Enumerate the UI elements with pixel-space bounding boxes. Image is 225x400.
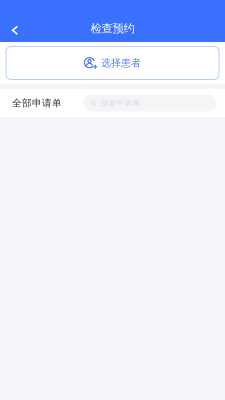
staticText: 检查预约	[90, 21, 134, 36]
button[interactable]: Back	[0, 15, 30, 42]
button[interactable]: Search requisitions	[83, 94, 216, 111]
staticText: 全部申请单	[12, 97, 62, 109]
button[interactable]: 选择患者	[0, 46, 225, 79]
staticText: 搜索申请单	[100, 98, 140, 108]
staticText: 选择患者	[101, 57, 141, 69]
